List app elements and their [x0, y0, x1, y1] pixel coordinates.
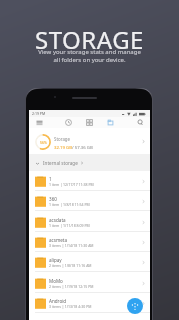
- button[interactable]: 360: [29, 191, 150, 211]
- staticText: 2 items | 1/8/18 11:16 AM: [49, 263, 92, 268]
- staticText: 1: [49, 176, 52, 182]
- staticText: STORAGE: [0, 23, 179, 56]
- button[interactable]: Expand: [33, 159, 41, 167]
- button[interactable]: Folders: [105, 117, 116, 128]
- button[interactable]: Menu: [34, 117, 45, 128]
- staticText: 3 items | 1/13/18 4:30 PM: [49, 304, 92, 309]
- staticText: Android: [49, 298, 67, 304]
- button[interactable]: acsdata: [29, 212, 150, 232]
- staticText: View your storage stats and manage all f…: [0, 48, 179, 64]
- staticText: Storage: [54, 136, 71, 142]
- staticText: 3 items | 1/14/18 11:30 AM: [49, 243, 94, 248]
- button[interactable]: alipay: [29, 252, 150, 272]
- staticText: 1 item | 1/11/18 8:09 PM: [49, 223, 90, 228]
- button[interactable]: 1: [29, 171, 150, 191]
- staticText: Internal storage: [43, 160, 78, 166]
- staticText: acsmeta: [49, 237, 68, 243]
- staticText: alipay: [49, 257, 62, 263]
- button[interactable]: Android: [29, 293, 150, 313]
- button[interactable]: Categories: [84, 117, 95, 128]
- button[interactable]: Select files: [127, 298, 143, 314]
- staticText: 1 item | 1/8/18 11:54 PM: [49, 202, 90, 207]
- staticText: acsdata: [49, 217, 66, 223]
- button[interactable]: acsmeta: [29, 232, 150, 252]
- button[interactable]: Search: [135, 117, 146, 128]
- button[interactable]: Recent: [63, 117, 74, 128]
- staticText: MoMo: [49, 278, 63, 284]
- staticText: 1 item | 12/17/17 11:38 PM: [49, 182, 94, 187]
- button[interactable]: MoMo: [29, 273, 150, 293]
- staticText: 2 items | 1/19/18 12:15 PM: [49, 284, 94, 289]
- staticText: 2:19 PM: [32, 111, 46, 116]
- button[interactable]: 56%: [29, 128, 150, 154]
- button[interactable]: Internal storage: [43, 160, 84, 166]
- staticText: 32.19 GB/ 57.36 GB: [54, 144, 93, 150]
- staticText: 56%: [40, 140, 47, 145]
- staticText: 360: [49, 196, 57, 202]
